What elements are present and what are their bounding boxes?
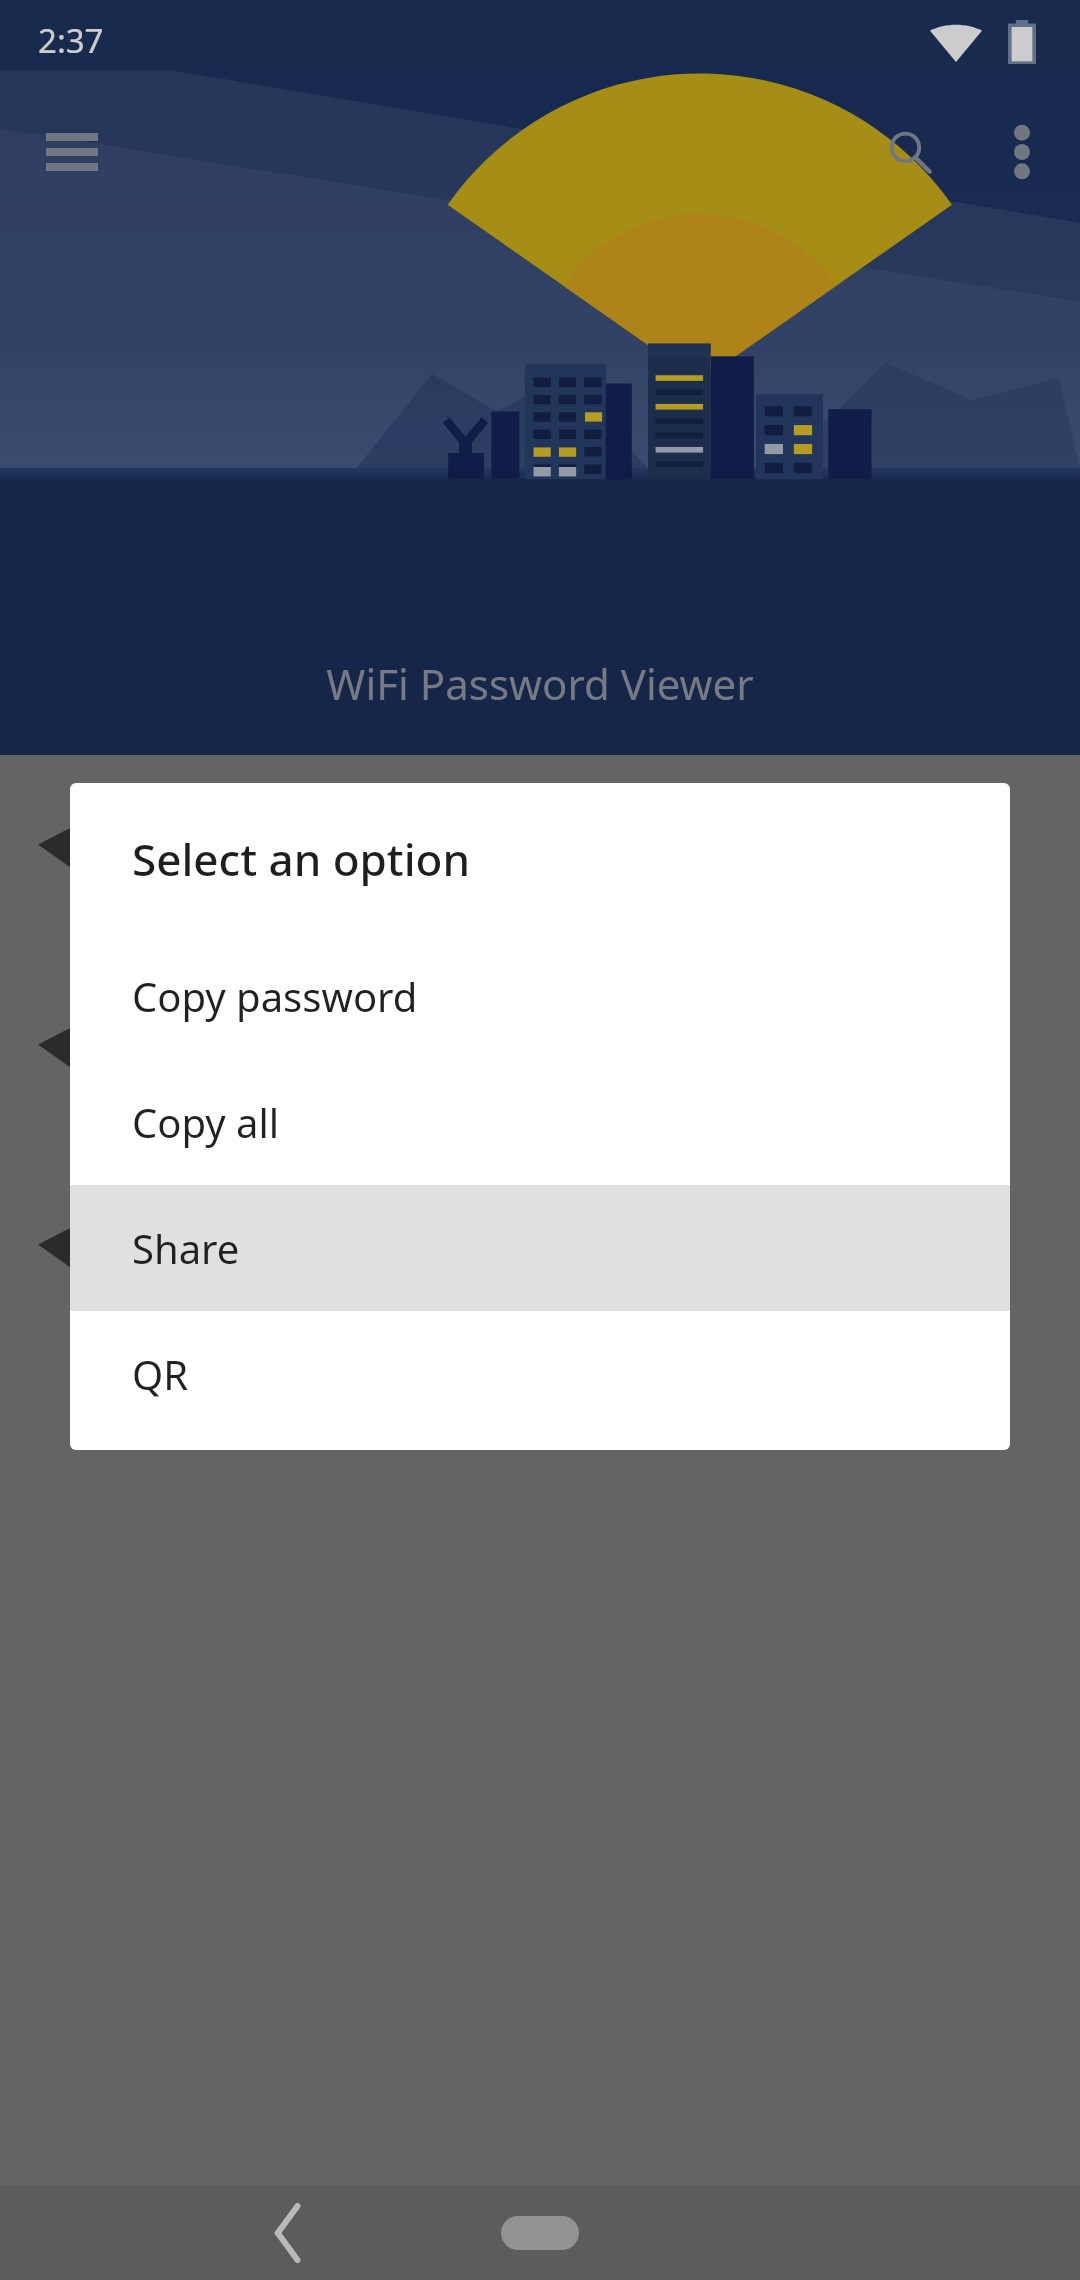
button[interactable]: Share (70, 1185, 1010, 1311)
button[interactable]: More options (980, 110, 1064, 194)
staticText: Copy all (132, 1095, 280, 1149)
button[interactable]: QR (70, 1311, 1010, 1437)
button[interactable]: Back (238, 2185, 338, 2280)
button[interactable]: Home (470, 2185, 610, 2280)
button[interactable]: Search (868, 110, 952, 194)
button[interactable]: Copy all (70, 1059, 1010, 1185)
staticText: QR (132, 1347, 189, 1401)
staticText: Share (132, 1221, 240, 1275)
staticText: Select an option (132, 829, 471, 889)
button[interactable]: Copy password (70, 933, 1010, 1059)
staticText: Copy password (132, 969, 418, 1023)
staticText: 2:37 (38, 18, 104, 63)
button[interactable]: Open navigation drawer (30, 110, 114, 194)
staticText: WiFi Password Viewer (0, 655, 1080, 712)
